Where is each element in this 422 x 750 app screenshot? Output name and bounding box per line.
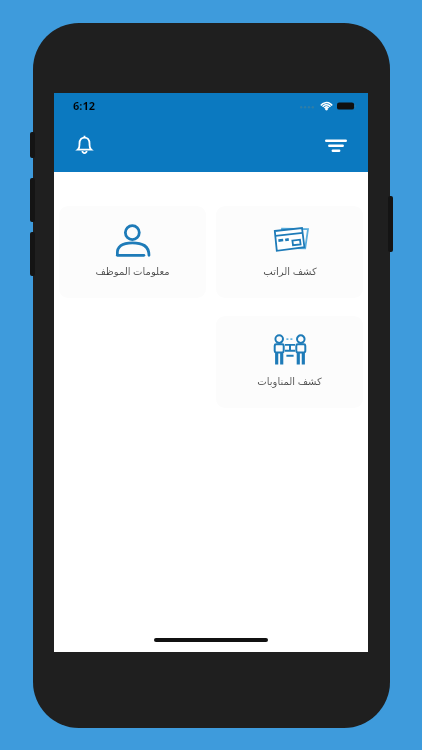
staticText: معلومات الموظف (95, 264, 170, 278)
staticText: كشف الراتب (263, 264, 317, 278)
staticText: كشف المناوبات (257, 374, 322, 388)
button[interactable]: معلومات الموظف (59, 206, 206, 298)
button[interactable]: كشف المناوبات (216, 316, 363, 408)
button[interactable]: كشف الراتب (216, 206, 363, 298)
button[interactable]: Menu (316, 125, 356, 165)
button[interactable]: Notifications (64, 125, 104, 165)
staticText: 6:12 (73, 98, 95, 113)
